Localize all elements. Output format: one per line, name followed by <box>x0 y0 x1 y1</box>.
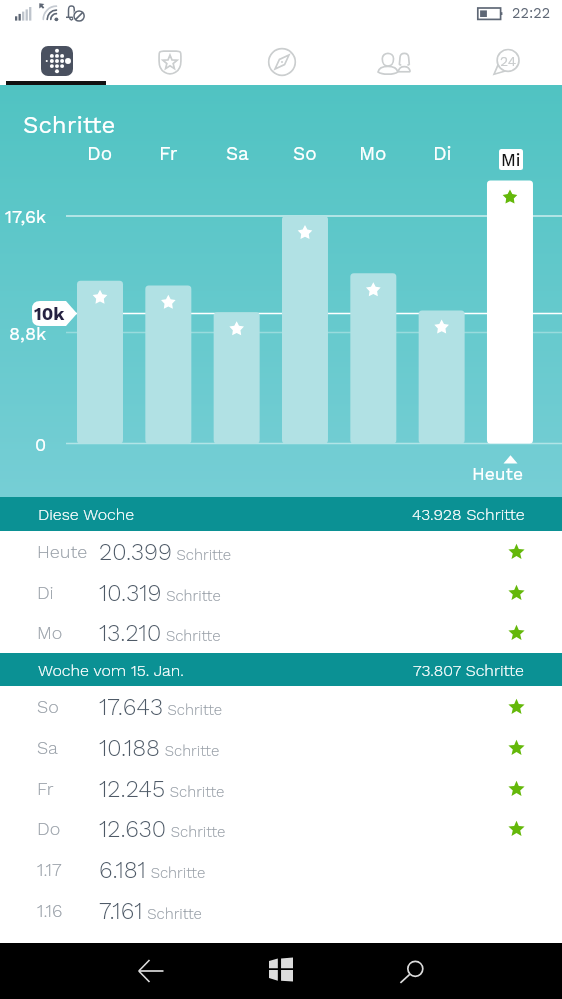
button[interactable]: Back <box>120 943 182 999</box>
staticText: 12.630 Schritte <box>99 815 226 843</box>
button[interactable]: Dashboard <box>0 30 113 85</box>
staticText: 1.16 <box>37 900 63 921</box>
staticText: Sa <box>226 142 249 164</box>
staticText: Heute <box>472 464 524 485</box>
staticText: Di <box>37 582 54 603</box>
staticText: 1.17 <box>37 859 62 880</box>
staticText: 13.210 Schritte <box>99 619 221 647</box>
button[interactable]: 1.16 <box>0 890 562 931</box>
staticText: 17.643 Schritte <box>99 693 223 721</box>
staticText: Sa <box>37 737 58 758</box>
button[interactable]: Friends <box>338 30 450 85</box>
staticText: 7.161 Schritte <box>99 897 202 925</box>
button[interactable]: Diese Woche <box>0 497 562 531</box>
staticText: Fr <box>159 142 178 164</box>
staticText: 10.319 Schritte <box>99 579 221 607</box>
staticText: Schritte <box>23 111 116 139</box>
staticText: Fr <box>37 778 54 799</box>
staticText: Do <box>87 142 113 164</box>
button[interactable]: Explore <box>226 30 338 85</box>
button[interactable]: Heute <box>0 531 562 572</box>
staticText: Mi <box>501 150 521 170</box>
button[interactable]: Di <box>0 572 562 613</box>
button[interactable]: Woche vom 15. Jan. <box>0 653 562 687</box>
button[interactable]: So <box>0 686 562 727</box>
staticText: So <box>293 142 317 164</box>
button[interactable]: Sa <box>0 727 562 768</box>
staticText: Diese Woche <box>38 505 135 524</box>
button[interactable]: Mo <box>0 612 562 653</box>
button[interactable]: Start <box>250 941 312 997</box>
staticText: 43.928 Schritte <box>412 505 525 524</box>
staticText: Woche vom 15. Jan. <box>38 661 184 680</box>
staticText: Heute <box>37 541 88 562</box>
staticText: Mo <box>359 142 387 164</box>
staticText: 0 <box>35 434 47 455</box>
button[interactable]: 1.17 <box>0 849 562 890</box>
staticText: 10k <box>34 303 65 324</box>
button[interactable]: Messages <box>450 30 562 85</box>
staticText: Do <box>37 818 61 839</box>
staticText: 8,8k <box>9 323 47 344</box>
staticText: Di <box>433 142 452 164</box>
button[interactable]: Do <box>0 808 562 849</box>
button[interactable]: Fr <box>0 768 562 809</box>
staticText: 17,6k <box>5 206 47 227</box>
staticText: 12.245 Schritte <box>99 775 225 803</box>
button[interactable]: Search <box>380 946 442 999</box>
staticText: 22:22 <box>512 5 551 22</box>
staticText: 10.188 Schritte <box>99 734 220 762</box>
staticText: 20.399 Schritte <box>99 538 232 566</box>
staticText: 73.807 Schritte <box>413 661 525 680</box>
staticText: So <box>37 696 59 717</box>
staticText: 24 <box>500 53 517 69</box>
staticText: Mo <box>37 622 63 643</box>
button[interactable]: Badges <box>113 30 226 85</box>
staticText: 6.181 Schritte <box>99 856 206 884</box>
